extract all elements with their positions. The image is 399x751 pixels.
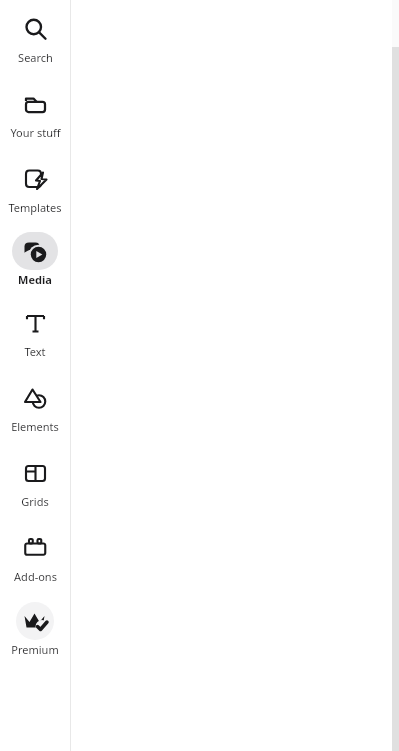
button[interactable]: Premium [0, 602, 70, 657]
button[interactable]: Media [0, 232, 70, 287]
staticText: Add-ons [14, 569, 57, 584]
button[interactable]: Your stuff [0, 85, 70, 140]
staticText: Premium [11, 642, 59, 657]
button[interactable]: Elements [0, 379, 70, 434]
staticText: Search [18, 50, 53, 65]
button[interactable]: Add-ons [0, 529, 70, 584]
staticText: Elements [11, 419, 59, 434]
staticText: Templates [8, 200, 62, 215]
button[interactable]: Search [0, 10, 70, 65]
button[interactable]: Templates [0, 160, 70, 215]
staticText: Media [18, 272, 52, 287]
staticText: Text [24, 344, 46, 359]
button[interactable]: Grids [0, 454, 70, 509]
button[interactable]: Text [0, 304, 70, 359]
staticText: Grids [21, 494, 49, 509]
staticText: Your stuff [10, 125, 61, 140]
